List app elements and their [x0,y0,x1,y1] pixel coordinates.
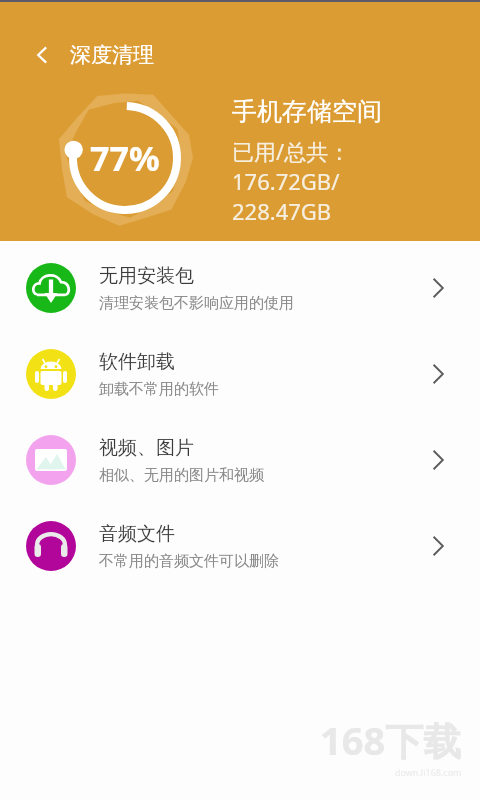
staticText: 视频、图片 [99,436,194,460]
staticText: 176.72GB/ [232,166,340,196]
button[interactable]: 视频、图片 [0,417,480,503]
button[interactable]: Back [26,38,60,72]
staticText: 无用安装包 [99,264,194,288]
staticText: 卸载不常用的软件 [99,380,219,399]
staticText: 手机存储空间 [232,96,382,127]
button[interactable]: 软件卸载 [0,331,480,417]
staticText: 相似、无用的图片和视频 [99,466,264,485]
button[interactable]: 软件卸载 [420,356,456,392]
staticText: 77% [90,135,160,181]
button[interactable]: 音频文件 [420,528,456,564]
staticText: 228.47GB [232,196,332,226]
staticText: 音频文件 [99,522,175,546]
staticText: 清理安装包不影响应用的使用 [99,294,294,313]
button[interactable]: 视频、图片 [420,442,456,478]
staticText: 168下载 [320,714,462,766]
staticText: 已用/总共： [232,136,351,166]
button[interactable]: 无用安装包 [420,270,456,306]
staticText: 不常用的音频文件可以删除 [99,552,279,571]
staticText: 深度清理 [70,42,154,68]
staticText: 软件卸载 [99,350,175,374]
button[interactable]: 音频文件 [0,503,480,589]
button[interactable]: 无用安装包 [0,245,480,331]
staticText: down.li168.com [395,766,462,778]
